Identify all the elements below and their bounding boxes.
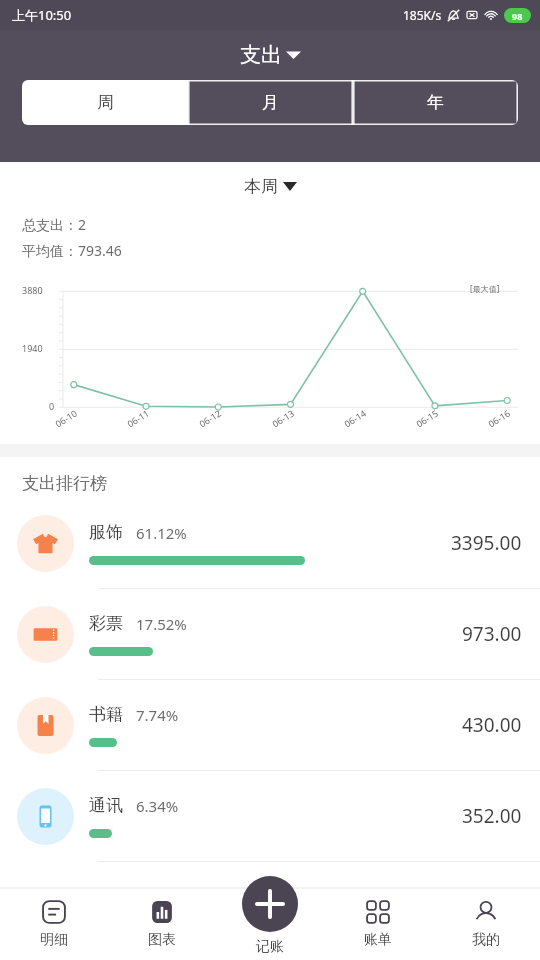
- staticText: 3880: [22, 284, 43, 296]
- button[interactable]: 书籍: [0, 680, 540, 771]
- button[interactable]: 年: [353, 80, 518, 125]
- staticText: 352.00: [462, 803, 522, 829]
- staticText: 平均值：793.46: [22, 241, 122, 260]
- staticText: 月: [262, 92, 279, 113]
- staticText: 图表: [148, 931, 176, 949]
- staticText: 账单: [364, 931, 392, 949]
- staticText: [最大值]: [470, 283, 500, 294]
- staticText: 通讯: [89, 795, 123, 816]
- staticText: 06-11: [125, 407, 151, 429]
- staticText: 书籍: [89, 704, 123, 725]
- staticText: 61.12%: [136, 523, 187, 543]
- staticText: 0: [49, 400, 55, 412]
- staticText: 周: [97, 92, 114, 113]
- button[interactable]: 通讯: [0, 771, 540, 862]
- staticText: 我的: [472, 931, 500, 949]
- staticText: 本周: [244, 176, 278, 197]
- staticText: 06-14: [342, 407, 368, 429]
- staticText: 06-10: [53, 407, 79, 429]
- staticText: 06-16: [486, 407, 512, 429]
- staticText: 430.00: [462, 712, 522, 738]
- button[interactable]: 周: [22, 80, 188, 125]
- button[interactable]: 月: [188, 80, 353, 125]
- button[interactable]: 服饰: [0, 498, 540, 589]
- staticText: 7.74%: [136, 705, 179, 725]
- button[interactable]: 我的: [432, 888, 540, 960]
- staticText: 记账: [256, 938, 284, 956]
- staticText: 06-15: [414, 407, 440, 429]
- staticText: 06-13: [270, 407, 296, 429]
- staticText: 彩票: [89, 613, 123, 634]
- staticText: 973.00: [462, 621, 522, 647]
- staticText: 支出: [240, 42, 282, 68]
- staticText: 6.34%: [136, 796, 179, 816]
- staticText: 总支出：2: [22, 215, 87, 234]
- staticText: 98: [512, 10, 523, 22]
- staticText: 1940: [22, 342, 43, 354]
- staticText: 17.52%: [136, 614, 187, 634]
- button[interactable]: 支出: [232, 40, 309, 70]
- staticText: 上午10:50: [12, 6, 72, 24]
- button[interactable]: 记账 添加: [216, 864, 324, 960]
- button[interactable]: 明细: [0, 888, 108, 960]
- button[interactable]: 彩票: [0, 589, 540, 680]
- staticText: 3395.00: [451, 530, 522, 556]
- staticText: 185K/s: [403, 7, 442, 23]
- staticText: 服饰: [89, 522, 123, 543]
- staticText: 年: [427, 92, 444, 113]
- button[interactable]: 账单: [324, 888, 432, 960]
- button[interactable]: 本周: [236, 174, 305, 199]
- staticText: 支出排行榜: [22, 473, 107, 494]
- staticText: 06-12: [197, 407, 223, 429]
- button[interactable]: 图表: [108, 888, 216, 960]
- staticText: 明细: [40, 931, 68, 949]
